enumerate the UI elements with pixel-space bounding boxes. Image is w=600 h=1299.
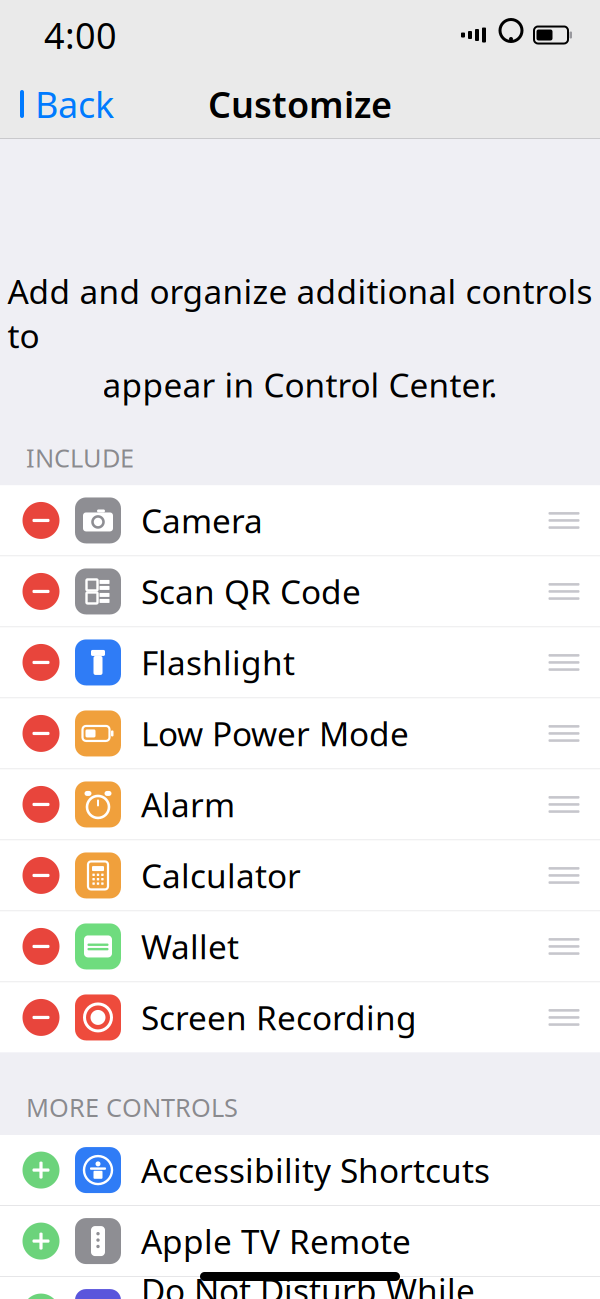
staticText: Low Power Mode [141,711,409,756]
staticText: Add and organize additional controls to [7,269,592,357]
button[interactable]: Alarm [0,769,600,840]
button[interactable]: Remove Screen Recording [19,995,63,1039]
button[interactable]: Accessibility Shortcuts [0,1135,600,1206]
button[interactable]: Add Do Not Disturb While Driving [19,1290,63,1299]
staticText: Calculator [141,853,301,898]
button[interactable]: Wallet [0,911,600,982]
staticText: 4:00 [44,11,117,59]
button[interactable]: Screen Recording [0,982,600,1052]
button[interactable]: Low Power Mode [0,698,600,769]
staticText: appear in Control Center. [102,362,497,407]
staticText: Screen Recording [141,995,417,1040]
button[interactable]: Do Not Disturb While Driving [0,1277,600,1299]
staticText: Camera [141,498,263,543]
button[interactable]: Remove Wallet [19,924,63,968]
button[interactable]: Apple TV Remote [0,1206,600,1277]
staticText: Scan QR Code [141,569,361,614]
button[interactable]: Add Apple TV Remote [19,1219,63,1263]
staticText: Customize [208,80,392,128]
button[interactable]: Back [0,74,114,134]
button[interactable]: Calculator [0,840,600,911]
button[interactable]: Remove Scan QR Code [19,569,63,613]
staticText: Do Not Disturb While Driving [141,1268,475,1299]
button[interactable]: Scan QR Code [0,556,600,627]
staticText: Wallet [141,924,239,969]
button[interactable]: Add Accessibility Shortcuts [19,1148,63,1192]
button[interactable]: Remove Flashlight [19,640,63,684]
staticText: MORE CONTROLS [26,1090,238,1124]
button[interactable]: Remove Low Power Mode [19,711,63,755]
button[interactable]: Camera [0,485,600,556]
button[interactable]: Flashlight [0,627,600,698]
staticText: Accessibility Shortcuts [141,1148,490,1192]
staticText: Back [35,80,114,128]
button[interactable]: Remove Camera [19,498,63,542]
button[interactable]: Remove Alarm [19,782,63,826]
staticText: INCLUDE [26,441,134,474]
staticText: Flashlight [141,640,295,685]
staticText: Apple TV Remote [141,1219,411,1263]
button[interactable]: Remove Calculator [19,853,63,897]
staticText: Alarm [141,782,235,827]
